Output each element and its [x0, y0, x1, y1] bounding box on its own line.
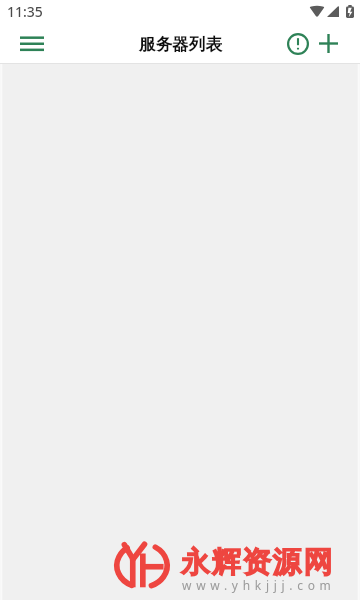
staticText: www.yhkjjj.com	[182, 577, 336, 593]
staticText: 11:35	[7, 2, 43, 21]
button[interactable]: Add	[311, 26, 346, 61]
staticText: 服务器列表	[139, 34, 222, 55]
button[interactable]: Info	[280, 26, 315, 61]
staticText: 永辉资源网	[180, 544, 333, 581]
button[interactable]: Menu	[14, 26, 50, 62]
